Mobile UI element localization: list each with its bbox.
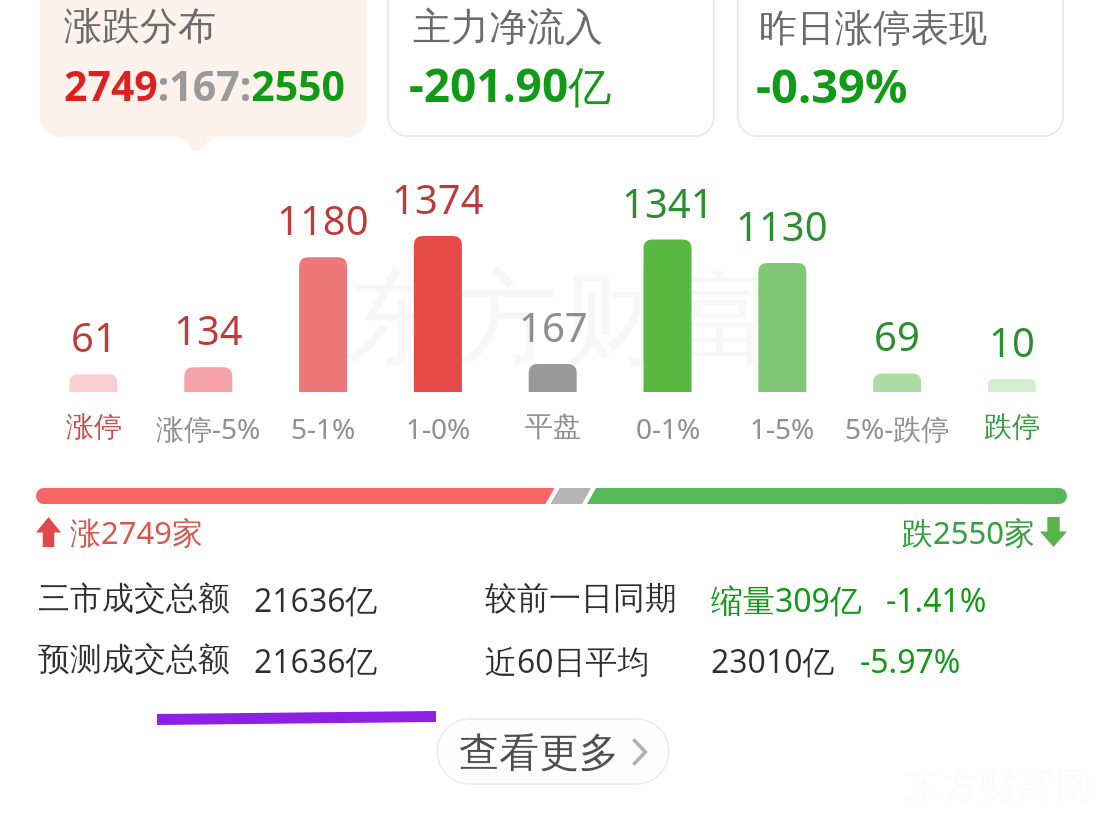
- button[interactable]: 缩量309亿: [711, 578, 862, 622]
- staticText: 167: [519, 299, 588, 353]
- button[interactable]: 查看更多: [436, 718, 670, 785]
- button[interactable]: 23010亿: [711, 639, 835, 683]
- button[interactable]: 1-5%: [702, 409, 862, 447]
- button[interactable]: 5-1%: [243, 409, 403, 447]
- button[interactable]: 涨停-5%: [128, 409, 288, 447]
- staticText: 涨2749家: [70, 511, 203, 553]
- button[interactable]: Advancing stocks: [36, 511, 203, 553]
- staticText: 1-0%: [406, 409, 471, 447]
- staticText: 1-5%: [750, 409, 815, 447]
- staticText: 69: [874, 308, 920, 362]
- staticText: -1.41%: [886, 578, 987, 622]
- button[interactable]: -5.97%: [860, 639, 961, 683]
- button[interactable]: 涨跌分布: [40, 0, 367, 137]
- button[interactable]: -1.41%: [886, 578, 987, 622]
- staticText: 预测成交总额: [38, 639, 230, 679]
- button[interactable]: 昨日涨停表现: [737, 0, 1064, 137]
- staticText: 较前一日同期: [485, 578, 677, 618]
- staticText: 三市成交总额: [38, 578, 230, 618]
- button[interactable]: 平盘: [473, 409, 633, 444]
- staticText: 1180: [277, 192, 369, 246]
- staticText: 21636亿: [254, 639, 378, 683]
- button[interactable]: 较前一日同期: [485, 578, 677, 618]
- button[interactable]: 跌2550家: [902, 511, 1067, 553]
- staticText: 1374: [392, 171, 484, 225]
- staticText: 5%-跌停: [845, 409, 950, 447]
- button[interactable]: 涨停: [14, 409, 174, 444]
- staticText: 跌2550家: [902, 511, 1035, 553]
- staticText: 21636亿: [254, 578, 378, 622]
- button[interactable]: 跌停: [932, 409, 1092, 444]
- button[interactable]: 预测成交总额: [38, 639, 230, 679]
- button[interactable]: 21636亿: [254, 639, 378, 683]
- other: Declining stocks: [1040, 517, 1067, 547]
- staticText: 近60日平均: [485, 639, 650, 683]
- other: Advancing stocks: [36, 517, 61, 547]
- staticText: 跌停: [984, 409, 1040, 444]
- staticText: -201.90亿: [409, 53, 612, 116]
- staticText: 平盘: [525, 409, 581, 444]
- staticText: 134: [174, 302, 243, 356]
- staticText: 昨日涨停表现: [759, 4, 987, 52]
- button[interactable]: 三市成交总额: [38, 578, 230, 618]
- button[interactable]: 0-1%: [588, 409, 748, 447]
- staticText: 主力净流入: [413, 3, 603, 51]
- staticText: 查看更多: [459, 727, 619, 777]
- staticText: 2749:167:2550: [64, 57, 346, 113]
- button[interactable]: 主力净流入: [387, 0, 715, 137]
- staticText: 5-1%: [291, 409, 356, 447]
- staticText: -0.39%: [756, 53, 908, 117]
- staticText: 涨停: [66, 409, 122, 444]
- staticText: 涨跌分布: [64, 2, 216, 50]
- staticText: 0-1%: [636, 409, 701, 447]
- button[interactable]: 1-0%: [358, 409, 518, 447]
- staticText: 23010亿: [711, 639, 835, 683]
- button[interactable]: 21636亿: [254, 578, 378, 622]
- staticText: 1130: [736, 198, 828, 252]
- button[interactable]: 近60日平均: [485, 639, 650, 683]
- staticText: 10: [989, 314, 1035, 368]
- staticText: 东方财富: [343, 255, 779, 383]
- staticText: -5.97%: [860, 639, 961, 683]
- staticText: 涨停-5%: [156, 409, 261, 447]
- button[interactable]: 5%-跌停: [817, 409, 977, 447]
- staticText: 1341: [622, 175, 714, 229]
- staticText: 缩量309亿: [711, 578, 862, 622]
- staticText: 61: [71, 309, 117, 363]
